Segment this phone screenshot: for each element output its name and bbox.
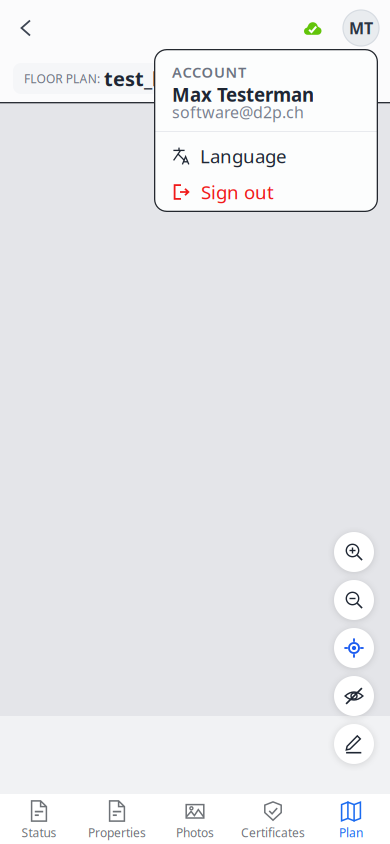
button[interactable]: Hide layers <box>334 676 374 716</box>
staticText: Sign out <box>201 180 274 204</box>
button[interactable]: Certificates <box>234 794 312 844</box>
button[interactable]: Account <box>343 0 390 56</box>
staticText: Photos <box>176 824 214 840</box>
staticText: software@d2p.ch <box>172 101 304 123</box>
button[interactable]: Photos <box>156 794 234 844</box>
button[interactable]: Zoom out <box>334 580 374 620</box>
staticText: Plan <box>339 824 363 840</box>
button[interactable]: Edit <box>334 724 374 764</box>
button[interactable]: Sync status <box>303 0 343 56</box>
button[interactable]: Properties <box>78 794 156 844</box>
staticText: FLOOR PLAN: <box>24 70 100 86</box>
button[interactable]: Zoom in <box>334 532 374 572</box>
button[interactable]: Status <box>0 794 78 844</box>
button[interactable]: Back <box>0 0 52 56</box>
button[interactable]: Sign out <box>154 174 378 210</box>
staticText: Properties <box>88 824 146 840</box>
staticText: test_high_building_plan <box>104 65 340 92</box>
button[interactable]: FLOOR PLAN: <box>13 63 377 94</box>
staticText: MT <box>349 17 373 39</box>
staticText: Certificates <box>241 824 305 840</box>
staticText: Status <box>21 824 56 840</box>
staticText: Max Testerman <box>172 82 314 107</box>
button[interactable]: Plan <box>312 794 390 844</box>
button[interactable]: Language <box>154 138 378 174</box>
staticText: ACCOUNT <box>172 62 246 82</box>
button[interactable]: Locate <box>334 628 374 668</box>
staticText: Language <box>200 144 287 168</box>
